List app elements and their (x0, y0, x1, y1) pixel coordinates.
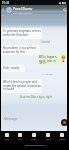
button[interactable]: To generate enigmatic entries within the… (2, 28, 42, 39)
button[interactable]: Profile (55, 131, 69, 142)
staticText: It seems like a typo, right (20, 95, 52, 99)
staticText: Message (4, 117, 18, 121)
button[interactable]: Record voice message (61, 119, 68, 126)
button[interactable]: Search (61, 5, 68, 14)
staticText: Profile (59, 138, 66, 141)
button[interactable]: Back (0, 5, 6, 14)
staticText: ● ▮▮▮ (59, 1, 67, 5)
staticText: 10:24 (2, 1, 10, 5)
button[interactable]: Apps (41, 131, 55, 142)
button[interactable]: No problem, it is a perfect sequence for… (2, 45, 40, 55)
staticText: No problem, it is a perfect sequence for… (3, 46, 39, 53)
button[interactable]: It seems like a typo, right (20, 95, 52, 99)
staticText: 11:40 AM (42, 72, 53, 75)
staticText: Video (31, 138, 37, 141)
button[interactable]: When I finish a project and restart the … (2, 79, 42, 93)
staticText: Chats (4, 138, 10, 141)
staticText: To generate enigmatic entries within the… (3, 29, 41, 36)
button[interactable]: Yeah, exactly (2, 65, 25, 72)
staticText: Will it happen again later in 2021? (39, 55, 61, 64)
button[interactable]: Will it happen again later in 2021? (38, 54, 62, 65)
staticText: Apps (46, 138, 51, 141)
staticText: Pavel Durov (13, 6, 33, 11)
staticText: Yeah, exactly (3, 66, 20, 70)
button[interactable]: Shop (13, 131, 27, 142)
staticText: When I finish a project and restart the … (3, 80, 41, 90)
button[interactable]: Video (27, 131, 41, 142)
staticText: last seen recently (13, 11, 33, 14)
staticText: Unread (41, 40, 51, 44)
button[interactable]: Chats (0, 131, 13, 142)
staticText: Shop (18, 138, 23, 141)
